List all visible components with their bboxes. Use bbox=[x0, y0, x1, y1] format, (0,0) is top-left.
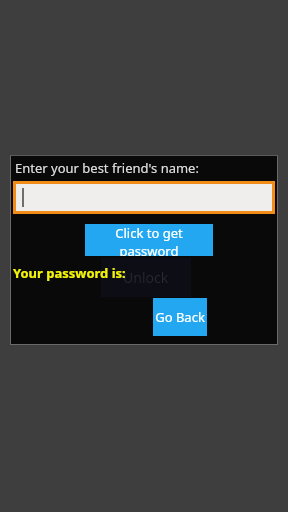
button[interactable]: Unlock bbox=[101, 258, 191, 297]
button[interactable] bbox=[13, 181, 275, 214]
staticText: Go Back bbox=[155, 308, 205, 326]
staticText: Click to get password bbox=[85, 224, 213, 256]
staticText: Enter your best friend's name: bbox=[15, 159, 199, 177]
button[interactable]: Go Back bbox=[153, 298, 207, 336]
staticText: Unlock bbox=[123, 268, 169, 287]
staticText: Your password is: bbox=[13, 264, 126, 282]
button[interactable]: Click to get password bbox=[85, 224, 213, 256]
